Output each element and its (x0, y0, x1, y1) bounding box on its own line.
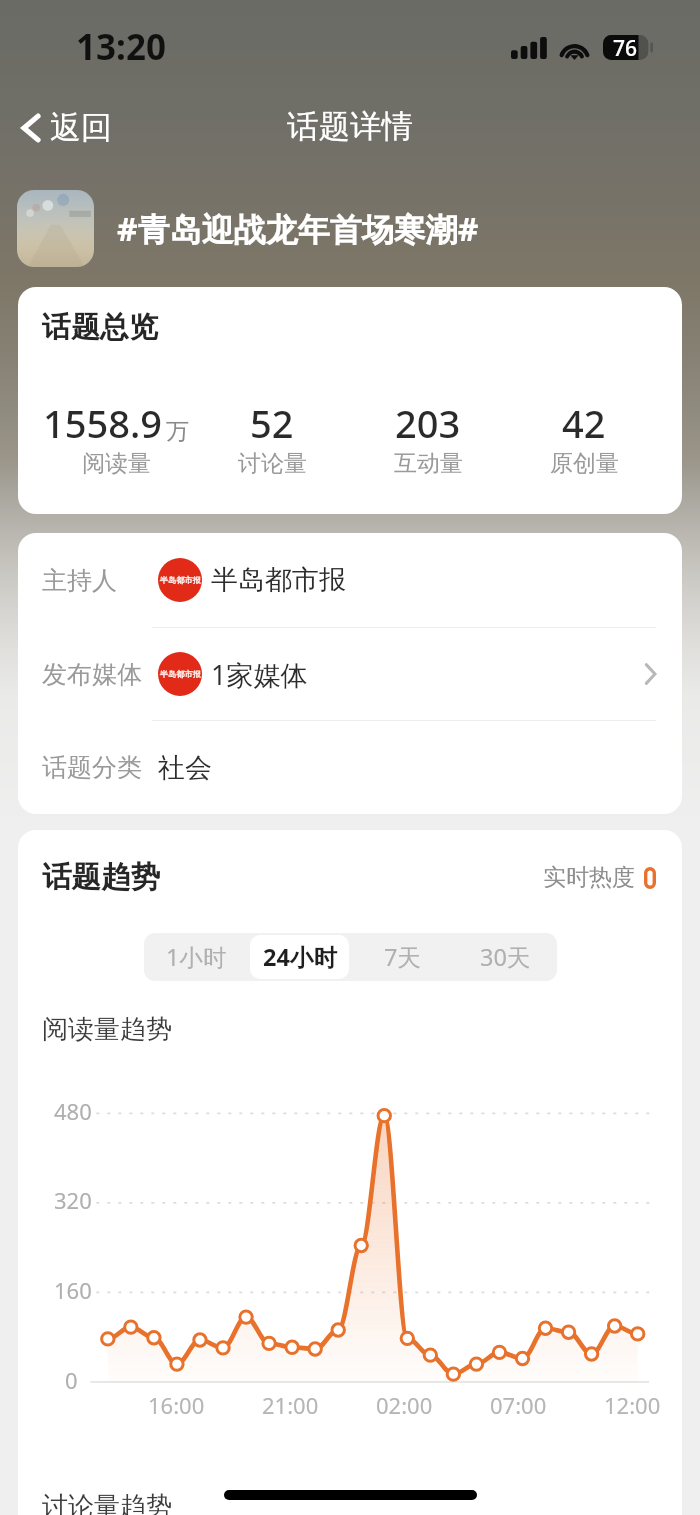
button[interactable]: 24小时 (250, 935, 349, 979)
staticText: 1558.9 (43, 397, 163, 449)
other: 查看发布媒体 (643, 661, 658, 687)
button[interactable]: 返回 (14, 100, 118, 155)
staticText: 半岛都市报 (160, 575, 201, 585)
staticText: 42 (562, 397, 606, 449)
staticText: 阅读量趋势 (42, 1013, 172, 1046)
staticText: 发布媒体 (42, 659, 158, 690)
staticText: #青岛迎战龙年首场寒潮# (117, 207, 479, 251)
staticText: 万 (166, 417, 189, 446)
staticText: 半岛都市报 (160, 669, 201, 679)
staticText: 7天 (384, 941, 421, 973)
staticText: 30天 (480, 941, 531, 973)
staticText: 203 (395, 397, 461, 449)
staticText: 480 (54, 1096, 92, 1126)
button[interactable]: 1小时 (146, 935, 246, 979)
staticText: 160 (54, 1275, 92, 1305)
staticText: 07:00 (490, 1390, 547, 1420)
staticText: 13:20 (76, 23, 166, 71)
staticText: 原创量 (550, 449, 619, 478)
button[interactable]: 7天 (353, 935, 452, 979)
button[interactable]: 30天 (456, 935, 555, 979)
staticText: 讨论量趋势 (42, 1490, 172, 1515)
staticText: 话题总览 (42, 309, 158, 346)
staticText: 21:00 (262, 1390, 319, 1420)
staticText: 返回 (50, 108, 112, 147)
staticText: 半岛都市报 (211, 563, 346, 597)
staticText: 24小时 (263, 941, 337, 973)
staticText: 话题分类 (42, 752, 158, 783)
staticText: 话题趋势 (42, 859, 160, 896)
staticText: 02:00 (376, 1390, 433, 1420)
staticText: 话题详情 (287, 107, 413, 147)
staticText: 12:00 (604, 1390, 661, 1420)
staticText: 主持人 (42, 565, 158, 596)
staticText: 阅读量 (82, 449, 151, 478)
staticText: 社会 (158, 751, 212, 785)
staticText: 1家媒体 (211, 656, 308, 693)
staticText: 76 (613, 34, 638, 59)
staticText: 1小时 (166, 941, 227, 973)
staticText: 互动量 (394, 449, 463, 478)
staticText: 讨论量 (238, 449, 307, 478)
staticText: 0 (65, 1365, 78, 1395)
staticText: 16:00 (148, 1390, 205, 1420)
staticText: 实时热度 (543, 863, 635, 892)
button[interactable]: 发布媒体 (18, 628, 682, 720)
staticText: 52 (250, 397, 294, 449)
staticText: 320 (54, 1185, 92, 1215)
